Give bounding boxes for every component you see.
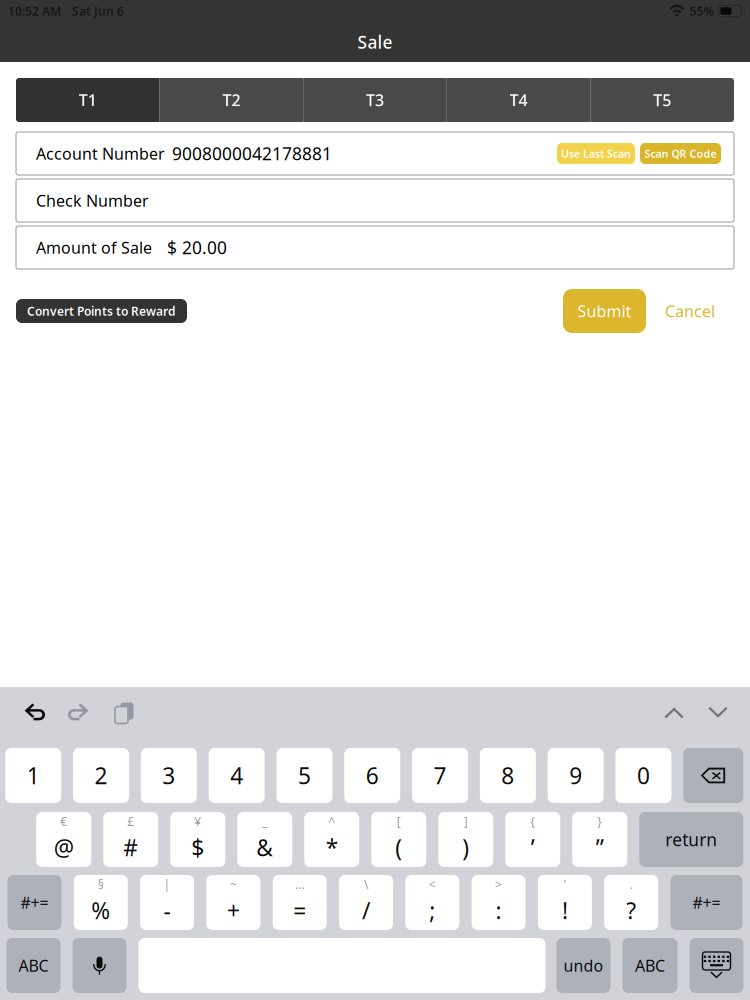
- button[interactable]: 0: [615, 748, 671, 803]
- staticText: ]: [464, 813, 468, 829]
- button[interactable]: 5: [276, 748, 332, 803]
- staticText: @: [54, 832, 74, 862]
- staticText: -: [164, 895, 171, 925]
- staticText: Sat Jun 6: [72, 3, 124, 19]
- button[interactable]: 7: [412, 748, 468, 803]
- button[interactable]: Next field: [707, 704, 729, 721]
- button[interactable]: _: [237, 812, 292, 867]
- button[interactable]: ]: [438, 812, 493, 867]
- button[interactable]: Paste: [113, 701, 135, 725]
- button[interactable]: \: [339, 875, 393, 930]
- button[interactable]: T5: [590, 78, 734, 122]
- staticText: 9008000042178881: [172, 142, 332, 165]
- button[interactable]: 3: [141, 748, 197, 803]
- staticText: Scan QR Code: [644, 146, 716, 161]
- button[interactable]: 8: [480, 748, 536, 803]
- staticText: #+=: [20, 892, 48, 913]
- staticText: Convert Points to Reward: [27, 303, 176, 319]
- button[interactable]: Hide keyboard: [689, 938, 743, 993]
- staticText: T4: [510, 89, 528, 111]
- staticText: T2: [222, 89, 240, 111]
- button[interactable]: T1: [16, 78, 160, 122]
- button[interactable]: Redo: [68, 702, 92, 723]
- staticText: 2: [94, 760, 107, 790]
- button[interactable]: ABC: [6, 938, 60, 993]
- staticText: €: [60, 813, 67, 829]
- staticText: 10:52 AM: [8, 3, 61, 19]
- staticText: =: [293, 895, 306, 925]
- button[interactable]: Convert Points to Reward: [16, 299, 187, 323]
- button[interactable]: Undo: [23, 702, 47, 723]
- staticText: ”: [596, 832, 604, 862]
- staticText: ABC: [635, 955, 665, 976]
- staticText: 0: [637, 760, 650, 790]
- staticText: T5: [653, 89, 671, 111]
- staticText: 9: [569, 760, 582, 790]
- button[interactable]: 9: [548, 748, 604, 803]
- button[interactable]: Use Last Scan: [557, 143, 635, 164]
- button[interactable]: €: [36, 812, 91, 867]
- staticText: return: [665, 828, 717, 851]
- staticText: $ 20.00: [167, 236, 227, 259]
- staticText: !: [562, 895, 568, 925]
- staticText: ^: [328, 813, 335, 829]
- staticText: …: [295, 876, 304, 892]
- staticText: %: [91, 895, 110, 925]
- button[interactable]: [: [371, 812, 426, 867]
- staticText: 5: [298, 760, 311, 790]
- staticText: 8: [501, 760, 514, 790]
- staticText: Sale: [357, 30, 392, 53]
- staticText: Amount of Sale: [36, 237, 152, 258]
- staticText: &: [256, 832, 273, 862]
- button[interactable]: 1: [5, 748, 61, 803]
- staticText: [: [397, 813, 401, 829]
- staticText: ): [462, 832, 469, 862]
- button[interactable]: <: [405, 875, 459, 930]
- button[interactable]: ¥: [170, 812, 225, 867]
- button[interactable]: #+=: [670, 875, 742, 930]
- button[interactable]: {: [505, 812, 560, 867]
- button[interactable]: T3: [303, 78, 447, 122]
- button[interactable]: ABC: [622, 938, 677, 993]
- button[interactable]: #+=: [7, 875, 61, 930]
- button[interactable]: ^: [304, 812, 359, 867]
- button[interactable]: 2: [73, 748, 129, 803]
- button[interactable]: >: [472, 875, 526, 930]
- button[interactable]: …: [273, 875, 327, 930]
- staticText: Check Number: [36, 190, 149, 211]
- staticText: <: [429, 876, 436, 892]
- staticText: ’: [531, 832, 535, 862]
- button[interactable]: Scan QR Code: [640, 143, 721, 164]
- staticText: undo: [563, 955, 603, 976]
- staticText: #+=: [692, 892, 720, 913]
- staticText: ~: [230, 876, 237, 892]
- button[interactable]: return: [639, 812, 743, 867]
- staticText: §: [98, 876, 104, 892]
- staticText: |: [164, 876, 171, 892]
- staticText: 4: [230, 760, 243, 790]
- button[interactable]: ~: [206, 875, 260, 930]
- button[interactable]: Previous field: [663, 704, 685, 721]
- staticText: 7: [434, 760, 447, 790]
- button[interactable]: §: [74, 875, 128, 930]
- staticText: Use Last Scan: [561, 146, 631, 161]
- button[interactable]: T2: [160, 78, 303, 122]
- button[interactable]: Dictation: [72, 938, 126, 993]
- staticText: /: [362, 895, 370, 925]
- button[interactable]: |: [140, 875, 194, 930]
- button[interactable]: Submit: [563, 289, 646, 333]
- button[interactable]: 6: [344, 748, 400, 803]
- button[interactable]: T4: [447, 78, 590, 122]
- button[interactable]: Delete: [683, 748, 743, 803]
- button[interactable]: }: [572, 812, 627, 867]
- staticText: }: [597, 813, 602, 829]
- button[interactable]: Cancel: [663, 289, 717, 333]
- button[interactable]: 4: [209, 748, 265, 803]
- button[interactable]: ': [538, 875, 592, 930]
- button[interactable]: undo: [556, 938, 610, 993]
- button[interactable]: £: [103, 812, 158, 867]
- staticText: 6: [366, 760, 379, 790]
- button[interactable]: .: [604, 875, 658, 930]
- staticText: _: [262, 813, 267, 829]
